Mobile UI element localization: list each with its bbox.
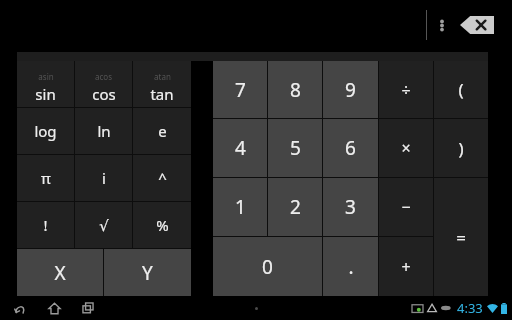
button[interactable]: 8 — [268, 61, 322, 118]
staticText: 2 — [290, 194, 301, 220]
button[interactable]: log — [17, 108, 74, 154]
button[interactable]: 6 — [323, 119, 378, 177]
staticText: ln — [97, 121, 111, 141]
staticText: 8 — [290, 77, 301, 103]
button[interactable]: % — [133, 202, 191, 248]
button[interactable]: atan — [133, 61, 191, 107]
button[interactable]: Delete — [457, 13, 497, 37]
staticText: 5 — [290, 135, 301, 161]
staticText: ^ — [158, 168, 167, 188]
button[interactable]: acos — [75, 61, 132, 107]
staticText: 0 — [262, 254, 273, 280]
staticText: ! — [43, 215, 48, 235]
staticText: e — [158, 121, 167, 141]
staticText: + — [401, 256, 411, 278]
button[interactable]: ln — [75, 108, 132, 154]
button[interactable]: Back — [6, 298, 34, 318]
staticText: = — [456, 226, 466, 249]
button[interactable]: ( — [434, 61, 488, 118]
button[interactable]: More options — [432, 12, 452, 38]
staticText: √ — [99, 217, 109, 234]
button[interactable]: asin — [17, 61, 74, 107]
staticText: i — [102, 168, 106, 188]
button[interactable]: Recent apps — [74, 298, 102, 318]
staticText: 4:33 — [457, 299, 483, 317]
staticText: 6 — [345, 135, 356, 161]
button[interactable]: 1 — [213, 178, 267, 236]
button[interactable]: 7 — [213, 61, 267, 118]
button[interactable]: Y — [104, 249, 191, 296]
staticText: X — [54, 260, 66, 286]
staticText: asin — [38, 71, 54, 82]
button[interactable]: ^ — [133, 155, 191, 201]
staticText: ÷ — [401, 79, 411, 101]
button[interactable]: √ — [75, 202, 132, 248]
staticText: 4 — [235, 135, 246, 161]
staticText: − — [401, 196, 411, 218]
button[interactable]: ! — [17, 202, 74, 248]
button[interactable]: e — [133, 108, 191, 154]
button[interactable]: π — [17, 155, 74, 201]
button[interactable]: 0 — [213, 237, 322, 296]
staticText: % — [156, 215, 169, 235]
staticText: π — [41, 168, 51, 188]
staticText: . — [348, 254, 354, 280]
staticText: 7 — [235, 77, 246, 103]
staticText: 3 — [345, 194, 356, 220]
button[interactable]: ÷ — [379, 61, 433, 118]
staticText: 1 — [235, 194, 246, 220]
staticText: log — [34, 121, 57, 141]
button[interactable]: 4 — [213, 119, 267, 177]
button[interactable]: − — [379, 178, 433, 236]
button[interactable]: . — [323, 237, 378, 296]
button[interactable]: × — [379, 119, 433, 177]
staticText: cos — [92, 84, 116, 104]
button[interactable]: 3 — [323, 178, 378, 236]
button[interactable]: 2 — [268, 178, 322, 236]
button[interactable]: 9 — [323, 61, 378, 118]
staticText: Y — [142, 260, 153, 286]
staticText: atan — [154, 71, 171, 82]
button[interactable]: ) — [434, 119, 488, 177]
staticText: tan — [150, 84, 174, 104]
button[interactable]: Home — [40, 298, 68, 318]
staticText: sin — [35, 84, 56, 104]
button[interactable]: = — [434, 178, 488, 296]
button[interactable]: 5 — [268, 119, 322, 177]
staticText: × — [401, 137, 411, 159]
button[interactable]: + — [379, 237, 433, 296]
button[interactable]: i — [75, 155, 132, 201]
staticText: ) — [458, 137, 464, 160]
staticText: acos — [95, 71, 112, 82]
button[interactable]: X — [17, 249, 103, 296]
staticText: ( — [458, 78, 464, 101]
staticText: 9 — [345, 77, 356, 103]
